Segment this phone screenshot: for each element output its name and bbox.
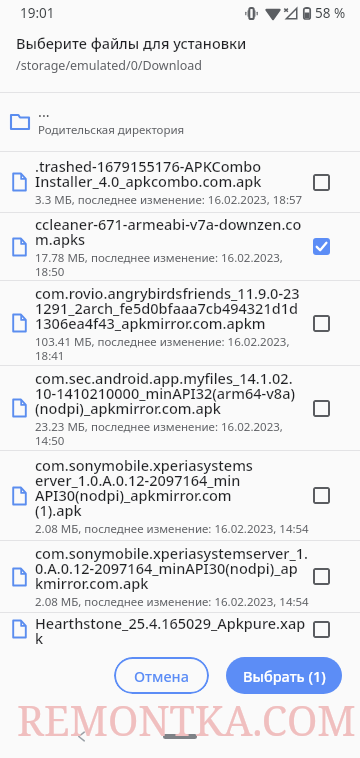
staticText: Выберите файлы для установки <box>16 33 247 53</box>
button[interactable]: Отмена <box>114 657 209 694</box>
staticText: ... <box>38 101 50 121</box>
button[interactable]: ccleaner-671-armeabi-v7a-downzen.co m.ap… <box>0 213 360 280</box>
staticText: /storage/emulated/0/Download <box>16 57 202 74</box>
button[interactable]: .trashed-1679155176-APKCombo Installer_4… <box>0 152 360 212</box>
button[interactable]: com.sonymobile.xperiasystemserver_1. 0.A… <box>0 541 360 612</box>
button[interactable]: com.sec.android.app.myfiles_14.1.02. 10-… <box>0 366 360 450</box>
staticText: 17.78 МБ, последнее изменение: 16.02.202… <box>35 250 283 280</box>
button[interactable]: ... <box>0 93 360 151</box>
staticText: Родительская директория <box>38 122 185 138</box>
button[interactable]: Hearthstone_25.4.165029_Apkpure.xap k <box>0 613 360 645</box>
staticText: Выбрать (1) <box>243 666 326 686</box>
staticText: REMONTKA.COM <box>17 692 356 748</box>
staticText: Hearthstone_25.4.165029_Apkpure.xap k <box>35 613 306 645</box>
staticText: 58 % <box>315 4 346 22</box>
staticText: com.sonymobile.xperiasystemserver_1. 0.A… <box>35 543 309 593</box>
button[interactable]: Выбрать (1) <box>226 657 342 694</box>
staticText: com.sonymobile.xperiasystems erver_1.0.A… <box>35 455 253 520</box>
staticText: 2.08 МБ, последнее изменение: 16.02.2023… <box>35 594 309 610</box>
staticText: com.sec.android.app.myfiles_14.1.02. 10-… <box>35 368 295 418</box>
button[interactable]: com.sonymobile.xperiasystems erver_1.0.A… <box>0 451 360 540</box>
staticText: .trashed-1679155176-APKCombo Installer_4… <box>35 156 262 191</box>
staticText: Отмена <box>134 666 189 686</box>
staticText: 103.41 МБ, последнее изменение: 16.02.20… <box>35 334 290 364</box>
button[interactable]: Back <box>70 725 92 747</box>
button[interactable]: Home <box>163 734 197 739</box>
staticText: com.rovio.angrybirdsfriends_11.9.0-23 12… <box>35 283 300 333</box>
staticText: 3.3 МБ, последнее изменение: 16.02.2023,… <box>35 192 303 208</box>
staticText: ccleaner-671-armeabi-v7a-downzen.co m.ap… <box>35 214 302 249</box>
button[interactable]: com.rovio.angrybirdsfriends_11.9.0-23 12… <box>0 281 360 365</box>
staticText: 23.23 МБ, последнее изменение: 16.02.202… <box>35 419 283 449</box>
staticText: 19:01 <box>20 4 55 22</box>
staticText: 2.08 МБ, последнее изменение: 16.02.2023… <box>35 521 309 537</box>
